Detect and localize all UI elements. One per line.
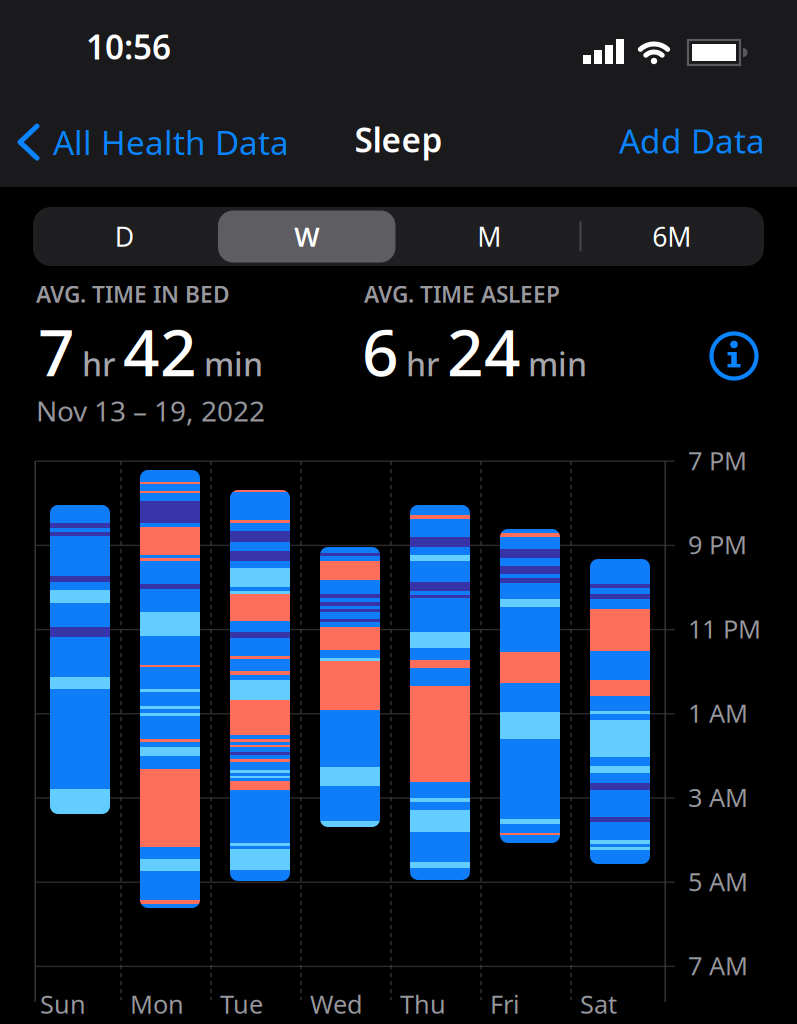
staticText: 7 AM	[688, 949, 748, 982]
staticText: min	[528, 343, 587, 385]
staticText: 1 AM	[688, 696, 748, 730]
button[interactable]: Add Data	[619, 118, 765, 163]
button[interactable]: W	[215, 207, 398, 266]
staticText: 6M	[652, 219, 691, 254]
staticText: 3 AM	[688, 780, 748, 814]
staticText: min	[204, 343, 263, 385]
staticText: 42	[123, 309, 197, 394]
staticText: D	[115, 219, 134, 254]
staticText: 10:56	[86, 24, 171, 69]
button[interactable]: M	[398, 207, 580, 266]
staticText: 11 PM	[688, 612, 761, 645]
staticText: W	[294, 219, 319, 254]
staticText: Mon	[130, 987, 184, 1021]
button[interactable]: All Health Data	[16, 120, 289, 164]
staticText: 7 PM	[688, 443, 747, 477]
button[interactable]: 6M	[580, 207, 763, 266]
staticText: 7	[38, 309, 75, 394]
staticText: Wed	[310, 987, 363, 1021]
staticText: Sun	[40, 987, 86, 1021]
button[interactable]: D	[33, 207, 215, 266]
staticText: 9 PM	[688, 528, 747, 561]
staticText: hr	[406, 343, 440, 385]
staticText: 5 AM	[688, 864, 748, 898]
staticText: 24	[447, 309, 521, 394]
staticText: All Health Data	[53, 120, 289, 164]
staticText: 6	[362, 309, 399, 394]
staticText: hr	[82, 343, 116, 385]
staticText: M	[477, 219, 501, 254]
staticText: Thu	[400, 987, 446, 1021]
staticText: Sat	[580, 987, 617, 1021]
staticText: AVG. TIME ASLEEP	[364, 279, 560, 309]
staticText: Nov 13 – 19, 2022	[36, 392, 265, 429]
staticText: Sleep	[354, 117, 442, 162]
staticText: Fri	[490, 987, 520, 1021]
button[interactable]	[709, 331, 759, 381]
staticText: AVG. TIME IN BED	[36, 279, 230, 309]
staticText: Tue	[220, 987, 263, 1021]
staticText: Add Data	[619, 118, 765, 163]
